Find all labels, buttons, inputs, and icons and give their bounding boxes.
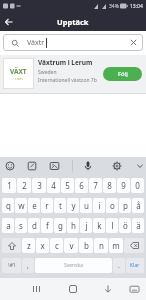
button[interactable]: q <box>2 198 14 213</box>
button[interactable]: p <box>119 198 131 213</box>
staticText: d <box>32 220 37 231</box>
staticText: å <box>136 200 141 211</box>
button[interactable]: 2 <box>17 178 31 193</box>
button[interactable] <box>0 278 48 300</box>
staticText: w <box>18 200 25 211</box>
button[interactable]: r <box>41 198 53 213</box>
staticText: Klar <box>130 262 140 269</box>
button[interactable]: . <box>113 258 125 273</box>
button[interactable]: 8 <box>103 178 116 193</box>
button[interactable]: Växtr <box>3 34 143 51</box>
staticText: r <box>45 200 49 211</box>
staticText: 2 <box>22 180 27 191</box>
button[interactable]: 1 <box>2 178 16 193</box>
button[interactable]: c <box>50 238 63 253</box>
button[interactable]: 7 <box>89 178 102 193</box>
button[interactable]: i <box>93 198 105 213</box>
button[interactable]: y <box>67 198 79 213</box>
button[interactable]: v <box>64 238 78 253</box>
staticText: 0 <box>135 180 140 191</box>
button[interactable]: g <box>54 218 66 233</box>
staticText: z <box>27 240 31 251</box>
button[interactable]: b <box>79 238 93 253</box>
button[interactable]: a <box>2 218 14 233</box>
staticText: !#1 <box>8 262 16 269</box>
button[interactable]: VÄXT <box>0 55 146 94</box>
button[interactable]: 5 <box>61 178 74 193</box>
button[interactable]: x <box>36 238 49 253</box>
staticText: p <box>123 200 128 211</box>
button[interactable]: 6 <box>75 178 88 193</box>
staticText: Växtrum i Lerum <box>38 58 93 67</box>
staticText: e <box>32 200 37 211</box>
button[interactable]: z <box>22 238 35 253</box>
button[interactable]: e <box>28 198 40 213</box>
button[interactable]: Svenska <box>35 258 112 273</box>
button[interactable]: !#1 <box>2 258 21 273</box>
staticText: 1 <box>7 180 12 191</box>
button[interactable]: n <box>94 238 108 253</box>
staticText: rum <box>15 76 23 81</box>
staticText: , <box>27 261 29 271</box>
button[interactable] <box>2 238 21 253</box>
staticText: m <box>112 240 120 251</box>
button[interactable]: m <box>109 238 123 253</box>
button[interactable] <box>124 238 144 253</box>
button[interactable] <box>0 157 73 175</box>
staticText: t <box>59 200 62 211</box>
staticText: b <box>84 240 89 251</box>
staticText: Svenska <box>64 262 84 269</box>
button[interactable]: h <box>67 218 79 233</box>
staticText: x <box>40 240 45 251</box>
staticText: Växtr <box>27 38 45 48</box>
staticText: 9 <box>121 180 126 191</box>
button[interactable] <box>73 157 146 175</box>
staticText: g <box>58 220 63 231</box>
button[interactable] <box>48 278 97 300</box>
button[interactable]: w <box>15 198 27 213</box>
staticText: 8 <box>107 180 112 191</box>
button[interactable]: j <box>80 218 92 233</box>
staticText: h <box>71 220 76 231</box>
button[interactable]: o <box>106 198 118 213</box>
button[interactable]: t <box>54 198 66 213</box>
button[interactable]: Klar <box>126 258 144 273</box>
button[interactable]: 3 <box>32 178 46 193</box>
staticText: o <box>110 200 115 211</box>
button[interactable] <box>5 18 13 26</box>
button[interactable]: d <box>28 218 40 233</box>
staticText: c <box>55 240 59 251</box>
staticText: 5 <box>65 180 70 191</box>
staticText: v <box>69 240 74 251</box>
button[interactable]: , <box>22 258 34 273</box>
staticText: n <box>99 240 104 251</box>
staticText: j <box>85 220 88 231</box>
button[interactable]: 4 <box>47 178 60 193</box>
button[interactable]: 0 <box>131 178 144 193</box>
button[interactable]: s <box>15 218 27 233</box>
button[interactable]: k <box>93 218 105 233</box>
button[interactable]: l <box>106 218 118 233</box>
staticText: VÄXT <box>10 67 27 76</box>
button[interactable]: f <box>41 218 53 233</box>
staticText: ä <box>136 220 141 231</box>
staticText: u <box>84 200 89 211</box>
staticText: a <box>6 220 11 231</box>
staticText: 7 <box>93 180 98 191</box>
button[interactable]: u <box>80 198 92 213</box>
button[interactable]: ä <box>132 218 144 233</box>
staticText: y <box>71 200 76 211</box>
staticText: k <box>97 220 102 231</box>
staticText: 4 <box>51 180 56 191</box>
button[interactable]: Följ <box>103 67 142 81</box>
button[interactable]: 9 <box>117 178 130 193</box>
button[interactable] <box>97 278 146 300</box>
staticText: f <box>46 220 49 231</box>
staticText: Sweden <box>38 69 57 76</box>
button[interactable]: å <box>132 198 144 213</box>
staticText: s <box>19 220 23 231</box>
button[interactable] <box>130 39 137 46</box>
button[interactable]: ö <box>119 218 131 233</box>
staticText: i <box>98 200 101 211</box>
staticText: 6 <box>79 180 84 191</box>
